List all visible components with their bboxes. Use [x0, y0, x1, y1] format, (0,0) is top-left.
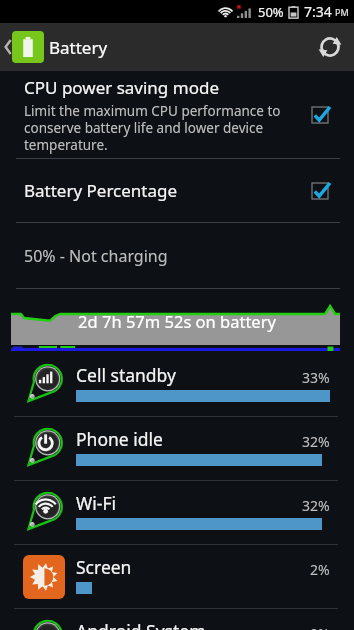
staticText: 32% — [302, 432, 330, 451]
button[interactable]: Toggle — [310, 181, 330, 201]
staticText: 33% — [302, 368, 330, 387]
staticText: PM — [335, 6, 349, 18]
staticText: 2d 7h 57m 52s on battery — [78, 310, 276, 332]
button[interactable]: Android System — [0, 609, 354, 630]
button[interactable]: Navigate up — [0, 23, 44, 71]
staticText: Phone idle — [76, 427, 302, 451]
staticText: Battery Percentage — [24, 179, 300, 202]
staticText: CPU power saving mode — [24, 76, 219, 99]
staticText: Screen — [76, 555, 310, 579]
button[interactable]: Battery Percentage — [0, 159, 354, 222]
button[interactable]: Toggle — [310, 105, 330, 125]
button[interactable]: Cell standby — [0, 353, 354, 417]
staticText: Limit the maximum CPU performance to con… — [24, 102, 292, 154]
button[interactable]: CPU power saving mode — [0, 71, 354, 158]
button[interactable]: Phone idle — [0, 417, 354, 481]
staticText: 32% — [302, 496, 330, 515]
staticText: Android System — [76, 619, 310, 630]
staticText: 50% — [258, 3, 284, 21]
button[interactable]: Screen — [0, 545, 354, 609]
staticText: 50% - Not charging — [24, 245, 168, 267]
button[interactable]: Refresh — [306, 23, 354, 71]
staticText: 2% — [310, 560, 330, 579]
staticText: Battery — [49, 36, 108, 59]
button[interactable]: Wi-Fi — [0, 481, 354, 545]
staticText: Cell standby — [76, 363, 302, 387]
staticText: Wi-Fi — [76, 491, 302, 515]
staticText: 0% — [310, 624, 330, 630]
staticText: 7:34 — [304, 2, 332, 21]
